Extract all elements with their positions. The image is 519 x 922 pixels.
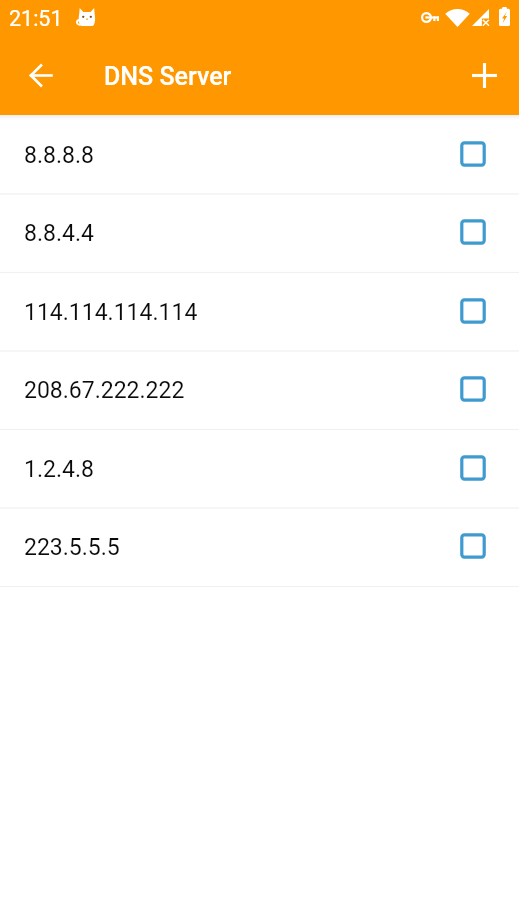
staticText: 8.8.8.8 — [24, 142, 94, 169]
button[interactable]: Back — [17, 51, 65, 99]
staticText: 1.2.4.8 — [24, 456, 94, 483]
button[interactable]: 8.8.8.8 — [0, 116, 519, 194]
button[interactable]: Select 114.114.114.114 — [460, 298, 486, 324]
staticText: 8.8.4.4 — [24, 220, 94, 247]
staticText: 21:51 — [9, 6, 63, 31]
button[interactable]: 8.8.4.4 — [0, 194, 519, 272]
staticText: 208.67.222.222 — [24, 377, 185, 404]
button[interactable]: Select 1.2.4.8 — [460, 455, 486, 481]
button[interactable]: 208.67.222.222 — [0, 351, 519, 429]
button[interactable]: Select 8.8.4.4 — [460, 219, 486, 245]
button[interactable]: Select 208.67.222.222 — [460, 376, 486, 402]
staticText: 114.114.114.114 — [24, 299, 198, 326]
button[interactable]: Select 223.5.5.5 — [460, 533, 486, 559]
button[interactable]: Add — [460, 51, 508, 99]
button[interactable]: 1.2.4.8 — [0, 430, 519, 508]
button[interactable]: 223.5.5.5 — [0, 508, 519, 586]
staticText: 223.5.5.5 — [24, 534, 120, 561]
staticText: DNS Server — [104, 62, 232, 91]
button[interactable]: Select 8.8.8.8 — [460, 141, 486, 167]
button[interactable]: 114.114.114.114 — [0, 273, 519, 351]
